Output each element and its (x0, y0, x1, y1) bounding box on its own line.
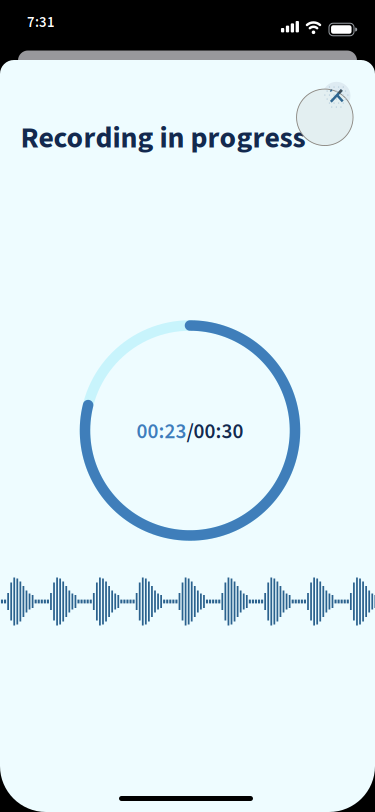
staticText: /00:30 (186, 417, 243, 446)
button[interactable]: Close (296, 89, 353, 146)
staticText: 00:23 (136, 417, 186, 446)
staticText: Recording in progress (20, 117, 305, 159)
staticText: 7:31 (27, 12, 55, 33)
